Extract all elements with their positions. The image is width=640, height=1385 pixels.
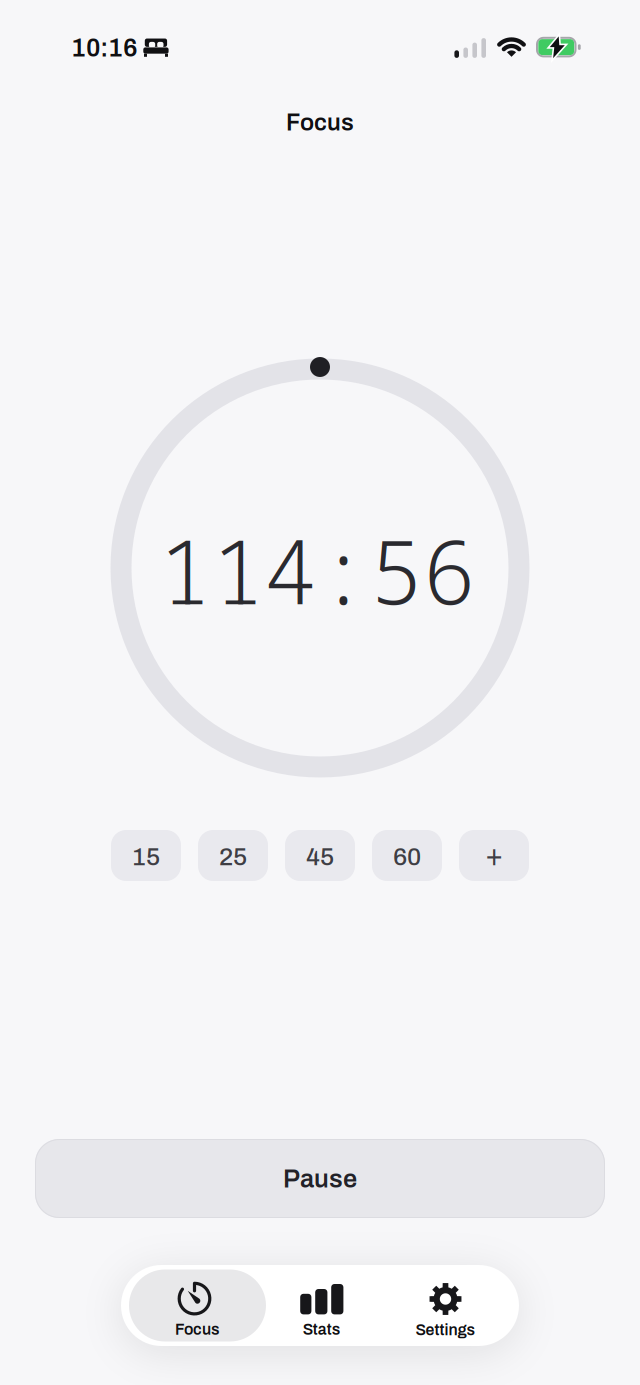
staticText: Settings	[415, 1321, 475, 1338]
staticText: Focus	[175, 1321, 220, 1338]
staticText: 25	[219, 843, 247, 870]
button[interactable]: 25	[198, 830, 268, 881]
button[interactable]: Focus	[129, 1269, 266, 1341]
staticText: +	[485, 839, 503, 871]
staticText: 45	[306, 843, 334, 870]
button[interactable]: Stats	[267, 1265, 377, 1346]
staticText: 60	[393, 843, 421, 870]
button[interactable]: 60	[372, 830, 442, 881]
button[interactable]: Settings	[390, 1265, 500, 1346]
button[interactable]: 45	[285, 830, 355, 881]
staticText: 10:16	[71, 34, 138, 62]
staticText: 15	[132, 843, 160, 870]
staticText: Stats	[303, 1321, 341, 1338]
staticText: Pause	[283, 1165, 357, 1193]
staticText: 114:56	[158, 510, 476, 630]
button[interactable]: Pause	[35, 1139, 605, 1218]
button[interactable]: +	[459, 830, 529, 881]
staticText: Focus	[286, 110, 354, 135]
button[interactable]: 15	[111, 830, 181, 881]
